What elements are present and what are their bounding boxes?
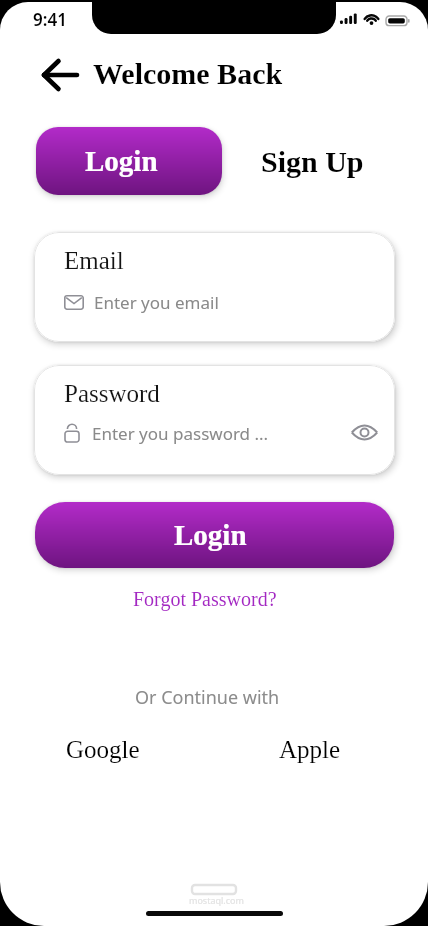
button[interactable]: Google (61, 732, 145, 768)
button[interactable]: Apple (268, 732, 352, 768)
staticText: Password (64, 380, 160, 408)
staticText: Email (64, 247, 124, 275)
staticText: Apple (279, 736, 341, 764)
button[interactable]: Login (36, 127, 222, 195)
staticText: Sign Up (261, 145, 364, 178)
staticText: Login (174, 519, 247, 551)
button[interactable] (40, 58, 80, 96)
staticText: Or Continue with (135, 685, 280, 710)
button[interactable] (345, 418, 383, 446)
staticText: Enter you password ... (92, 422, 269, 445)
staticText: 9:41 (33, 8, 67, 31)
staticText: Forgot Password? (133, 588, 277, 610)
staticText: Welcome Back (93, 57, 283, 90)
staticText: Google (66, 736, 140, 764)
staticText: Login (85, 145, 158, 177)
staticText: Enter you email (94, 291, 219, 314)
button[interactable]: Forgot Password? (115, 584, 295, 614)
button[interactable]: Login (35, 502, 394, 568)
button[interactable]: Email (34, 232, 395, 342)
button[interactable]: Password (34, 365, 395, 475)
staticText: mostaql.com (189, 894, 244, 906)
button[interactable]: Sign Up (240, 127, 384, 195)
